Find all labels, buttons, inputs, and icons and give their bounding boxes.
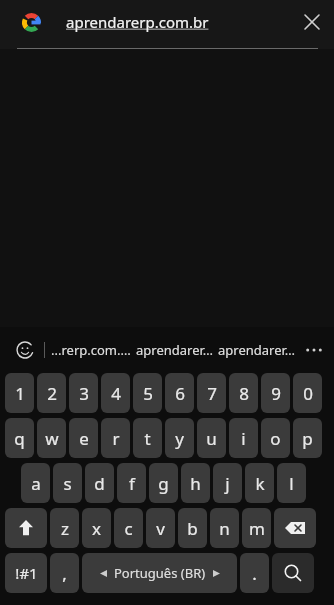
- button[interactable]: o: [261, 418, 290, 458]
- staticText: k: [255, 472, 265, 495]
- button[interactable]: c: [114, 508, 143, 548]
- button[interactable]: 4: [101, 373, 130, 413]
- button[interactable]: u: [197, 418, 226, 458]
- staticText: s: [63, 472, 72, 495]
- button[interactable]: More options: [298, 328, 330, 372]
- staticText: 5: [143, 382, 153, 405]
- button[interactable]: aprendarerp.com.br: [66, 12, 290, 32]
- staticText: p: [302, 427, 313, 450]
- button[interactable]: x: [82, 508, 111, 548]
- button[interactable]: v: [146, 508, 175, 548]
- staticText: ...rerp.com.né: [51, 341, 134, 359]
- staticText: v: [156, 517, 165, 540]
- button[interactable]: Close: [290, 0, 334, 44]
- staticText: b: [187, 517, 198, 540]
- staticText: h: [190, 472, 201, 495]
- button[interactable]: aprendarer…: [216, 328, 298, 372]
- button[interactable]: i: [229, 418, 258, 458]
- button[interactable]: ...rerp.com.né: [51, 328, 134, 372]
- button[interactable]: Emoji: [12, 337, 38, 363]
- button[interactable]: Backspace: [274, 508, 316, 548]
- staticText: 1: [15, 382, 25, 405]
- button[interactable]: 0: [293, 373, 322, 413]
- staticText: ,: [62, 562, 67, 585]
- staticText: m: [249, 517, 265, 540]
- button[interactable]: f: [117, 463, 146, 503]
- button[interactable]: 9: [261, 373, 290, 413]
- staticText: a: [31, 472, 41, 495]
- button[interactable]: h: [181, 463, 210, 503]
- button[interactable]: !#1: [5, 553, 47, 593]
- button[interactable]: q: [5, 418, 34, 458]
- staticText: .: [252, 562, 257, 585]
- staticText: n: [219, 517, 230, 540]
- staticText: 9: [271, 382, 281, 405]
- button[interactable]: 1: [5, 373, 34, 413]
- button[interactable]: b: [178, 508, 207, 548]
- button[interactable]: w: [37, 418, 66, 458]
- staticText: x: [92, 517, 101, 540]
- staticText: t: [144, 427, 151, 450]
- button[interactable]: 7: [197, 373, 226, 413]
- button[interactable]: t: [133, 418, 162, 458]
- staticText: g: [158, 472, 169, 495]
- staticText: u: [206, 427, 217, 450]
- staticText: o: [270, 427, 281, 450]
- button[interactable]: Shift: [5, 508, 47, 548]
- button[interactable]: j: [213, 463, 242, 503]
- button[interactable]: a: [21, 463, 50, 503]
- button[interactable]: 5: [133, 373, 162, 413]
- staticText: 3: [79, 382, 89, 405]
- button[interactable]: Português (BR): [82, 553, 237, 593]
- staticText: r: [112, 427, 120, 450]
- button[interactable]: k: [245, 463, 274, 503]
- staticText: 7: [207, 382, 217, 405]
- staticText: aprendarer…: [218, 341, 296, 359]
- staticText: d: [94, 472, 105, 495]
- staticText: y: [175, 427, 184, 450]
- button[interactable]: 8: [229, 373, 258, 413]
- button[interactable]: m: [242, 508, 271, 548]
- staticText: q: [14, 427, 25, 450]
- staticText: 4: [111, 382, 121, 405]
- button[interactable]: 2: [37, 373, 66, 413]
- button[interactable]: s: [53, 463, 82, 503]
- staticText: 8: [239, 382, 249, 405]
- button[interactable]: .: [240, 553, 269, 593]
- staticText: !#1: [15, 563, 38, 583]
- button[interactable]: y: [165, 418, 194, 458]
- staticText: aprendarer…: [136, 341, 214, 359]
- staticText: aprendarerp.com.br: [66, 12, 209, 32]
- button[interactable]: 3: [69, 373, 98, 413]
- button[interactable]: p: [293, 418, 322, 458]
- button[interactable]: r: [101, 418, 130, 458]
- button[interactable]: z: [50, 508, 79, 548]
- button[interactable]: d: [85, 463, 114, 503]
- staticText: l: [289, 472, 294, 495]
- staticText: w: [45, 427, 59, 450]
- staticText: c: [124, 517, 133, 540]
- button[interactable]: aprendarer…: [134, 328, 216, 372]
- button[interactable]: ,: [50, 553, 79, 593]
- button[interactable]: Search: [272, 553, 314, 593]
- button[interactable]: g: [149, 463, 178, 503]
- staticText: f: [129, 472, 135, 495]
- staticText: z: [61, 517, 69, 540]
- button[interactable]: n: [210, 508, 239, 548]
- staticText: Português (BR): [114, 564, 206, 582]
- staticText: 6: [175, 382, 185, 405]
- button[interactable]: Google: [20, 11, 42, 33]
- button[interactable]: 6: [165, 373, 194, 413]
- button[interactable]: e: [69, 418, 98, 458]
- staticText: i: [241, 427, 246, 450]
- staticText: 0: [303, 382, 313, 405]
- staticText: 2: [47, 382, 57, 405]
- staticText: e: [79, 427, 89, 450]
- button[interactable]: l: [277, 463, 306, 503]
- staticText: j: [225, 472, 230, 495]
